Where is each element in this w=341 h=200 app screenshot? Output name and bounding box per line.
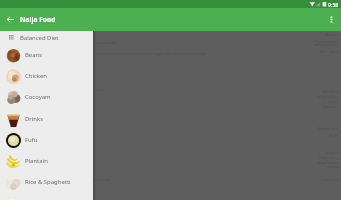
button[interactable] [0, 193, 93, 200]
staticText: Grilled [0, 150, 338, 156]
button[interactable]: Cocoyam [0, 86, 93, 107]
staticText: Chicken [25, 72, 47, 80]
staticText: Naija Food [20, 15, 56, 24]
button[interactable]: Chicken [0, 65, 93, 86]
button[interactable]: Beans [0, 44, 93, 65]
button[interactable]: Fufu [0, 129, 93, 150]
button[interactable]: Back [0, 8, 21, 30]
staticText: Noodles [0, 89, 338, 95]
staticText: meal [0, 99, 338, 105]
staticText: Preparation [0, 39, 338, 45]
staticText: Coleslaw [0, 177, 338, 183]
staticText: Drinks [25, 115, 44, 123]
staticText: Chicken + [0, 155, 338, 161]
staticText: Moi - Moi [0, 49, 338, 55]
staticText: and beyond [0, 42, 338, 48]
staticText: Fufu [25, 136, 38, 144]
button[interactable]: Drinks [0, 108, 93, 129]
staticText: vegetables [0, 160, 338, 166]
button[interactable]: Plantain [0, 150, 93, 171]
staticText: eggs [0, 132, 338, 138]
staticText: Plantain [25, 157, 48, 165]
staticText: vegetables [0, 94, 338, 100]
staticText: Dinner [0, 32, 338, 37]
button[interactable]: More options [322, 8, 341, 30]
staticText: Rice & Spaghetti [25, 178, 71, 186]
staticText: Toasts and [0, 126, 338, 132]
staticText: Balanced Diet [20, 34, 59, 42]
staticText: sauce [0, 164, 338, 170]
button[interactable]: Rice & Spaghetti [0, 171, 93, 192]
staticText: Cocoyam [25, 93, 51, 101]
button[interactable]: Balanced Diet [0, 31, 93, 44]
staticText: optional [0, 104, 338, 110]
staticText: Beans [25, 51, 43, 59]
staticText: 9:58 [328, 1, 339, 8]
